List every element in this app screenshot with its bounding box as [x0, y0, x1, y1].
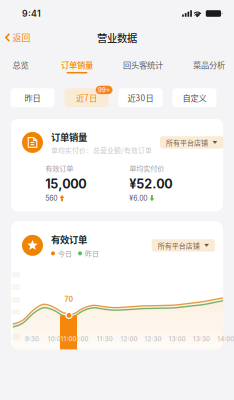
- staticText: 有效订单: [45, 163, 73, 173]
- button[interactable]: 菜品分析: [191, 55, 227, 77]
- staticText: ¥6.00: [129, 194, 147, 202]
- staticText: 所有平台店铺: [158, 240, 200, 250]
- button[interactable]: 近30日: [118, 86, 166, 107]
- staticText: 99+: [98, 86, 110, 94]
- staticText: 12:30: [145, 335, 162, 343]
- staticText: 00: [12, 333, 20, 341]
- staticText: 总览: [12, 59, 28, 71]
- button[interactable]: 订单销量: [59, 55, 95, 77]
- staticText: 70: [64, 295, 73, 303]
- staticText: 00: [12, 284, 20, 291]
- staticText: 今日: [58, 248, 72, 258]
- staticText: 所有平台店铺: [166, 137, 208, 147]
- button[interactable]: 总览: [8, 55, 33, 77]
- staticText: 近7日: [76, 92, 97, 104]
- staticText: 15,000: [45, 176, 86, 191]
- button[interactable]: 所有平台店铺: [152, 239, 215, 252]
- staticText: 昨日: [24, 92, 40, 104]
- button[interactable]: 近7日: [64, 86, 112, 107]
- button[interactable]: 所有平台店铺: [160, 136, 223, 149]
- staticText: 自定义: [182, 92, 206, 104]
- staticText: 00: [12, 296, 20, 304]
- staticText: 昨日: [85, 248, 99, 258]
- staticText: 营业数据: [97, 30, 137, 45]
- staticText: 返回: [12, 31, 30, 44]
- staticText: 11:00: [60, 335, 76, 343]
- staticText: 单均实付价：总营业额/有效订单: [51, 145, 152, 155]
- staticText: 13:30: [193, 335, 210, 343]
- staticText: 9:30: [25, 335, 39, 343]
- staticText: 10:00: [48, 335, 65, 343]
- staticText: 9:41: [22, 8, 41, 19]
- staticText: 单均实付价: [129, 163, 164, 173]
- staticText: 菜品分析: [193, 59, 225, 71]
- staticText: 00: [12, 321, 20, 328]
- staticText: ¥52.00: [129, 176, 172, 191]
- staticText: 14:00: [217, 335, 234, 343]
- staticText: 11:30: [97, 335, 113, 343]
- staticText: 12:00: [120, 335, 137, 343]
- button[interactable]: 自定义: [172, 86, 220, 107]
- staticText: 订单销量: [61, 59, 93, 71]
- staticText: 回头客统计: [123, 59, 163, 71]
- staticText: 00: [12, 271, 20, 279]
- staticText: 00: [12, 309, 20, 316]
- button[interactable]: 返回: [0, 26, 38, 48]
- staticText: 有效订单: [51, 232, 87, 246]
- button[interactable]: 昨日: [10, 86, 58, 107]
- button[interactable]: 回头客统计: [121, 55, 165, 77]
- staticText: 13:00: [169, 335, 186, 343]
- staticText: 近30日: [127, 92, 153, 104]
- staticText: 11:00: [72, 335, 88, 343]
- staticText: 560: [45, 194, 57, 202]
- staticText: 订单销量: [51, 130, 87, 143]
